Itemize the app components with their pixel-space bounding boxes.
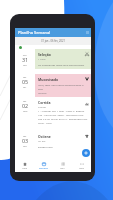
staticText: Planilha Semanal (18, 30, 51, 35)
staticText: ter (23, 85, 27, 88)
button[interactable]: fev (15, 99, 91, 131)
staticText: Ociiene (38, 134, 51, 139)
staticText: 03 (22, 137, 29, 144)
staticText: Budget note (38, 145, 53, 148)
staticText: 1 hora (38, 57, 46, 60)
button[interactable]: Hoje (15, 159, 34, 172)
staticText: Mês (60, 167, 65, 170)
staticText: Corrida (38, 100, 51, 105)
staticText: 31 jan - 06 fev, 2021 (41, 39, 66, 43)
staticText: Mucovisado (38, 77, 59, 82)
button[interactable]: fev (15, 72, 91, 99)
button[interactable]: Semana (34, 159, 53, 172)
staticText: Hoje (22, 167, 27, 170)
staticText: 05 (22, 78, 29, 85)
staticText: 02 (22, 102, 29, 109)
staticText: Abrir, fazer uma oferta apresentando o p… (38, 83, 88, 95)
staticText: qua (23, 109, 28, 112)
staticText: jan (23, 53, 27, 56)
staticText: fev (23, 134, 27, 137)
staticText: 4h 9m (38, 139, 46, 142)
staticText: Mais (79, 167, 85, 170)
button[interactable]: Mais (72, 159, 91, 172)
staticText: 07h5m (38, 105, 47, 108)
button[interactable]: Adicionar (82, 149, 90, 157)
staticText: 1 - Aquecer por 1 Mim - Levar 2. Repetir… (38, 109, 88, 125)
staticText: qui (23, 144, 27, 147)
staticText: Semana (39, 167, 48, 170)
staticText: fev (23, 75, 27, 78)
staticText: fev (23, 99, 27, 102)
staticText: Seleção (38, 52, 51, 57)
staticText: qui (23, 63, 27, 66)
button[interactable]: Mês (53, 159, 72, 172)
staticText: 31 (22, 56, 29, 63)
button[interactable]: jan (15, 47, 91, 72)
button[interactable]: fev (15, 131, 91, 158)
staticText: Os integrantes deste time selecionados (38, 63, 85, 66)
button[interactable]: Planilha Semanal (15, 28, 91, 37)
